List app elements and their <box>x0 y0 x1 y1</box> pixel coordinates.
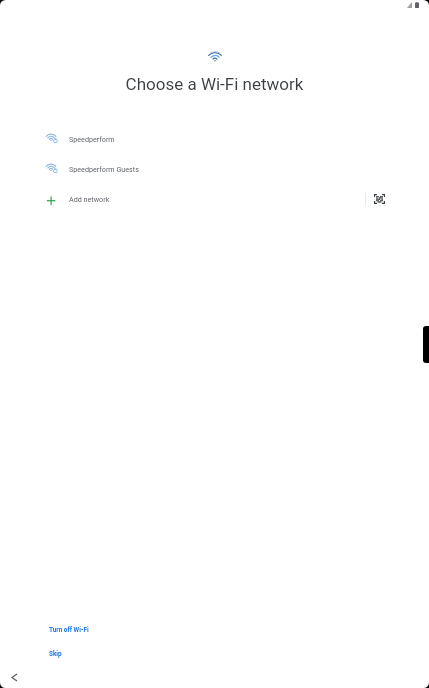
staticText: Turn off Wi-Fi <box>49 626 89 634</box>
button[interactable]: Turn off Wi-Fi <box>49 626 89 634</box>
button[interactable]: Scan QR code <box>366 184 393 214</box>
staticText: Skip <box>49 650 62 658</box>
button[interactable]: Skip <box>49 650 62 658</box>
button[interactable]: Add network <box>0 184 365 214</box>
staticText: Speedperform Guests <box>69 165 139 173</box>
button[interactable]: Speedperform Guests <box>0 154 429 184</box>
button[interactable]: Back <box>5 668 24 687</box>
button[interactable]: Speedperform <box>0 124 429 154</box>
staticText: Add network <box>69 195 110 203</box>
staticText: Speedperform <box>69 135 115 143</box>
staticText: Choose a Wi-Fi network <box>0 74 429 94</box>
